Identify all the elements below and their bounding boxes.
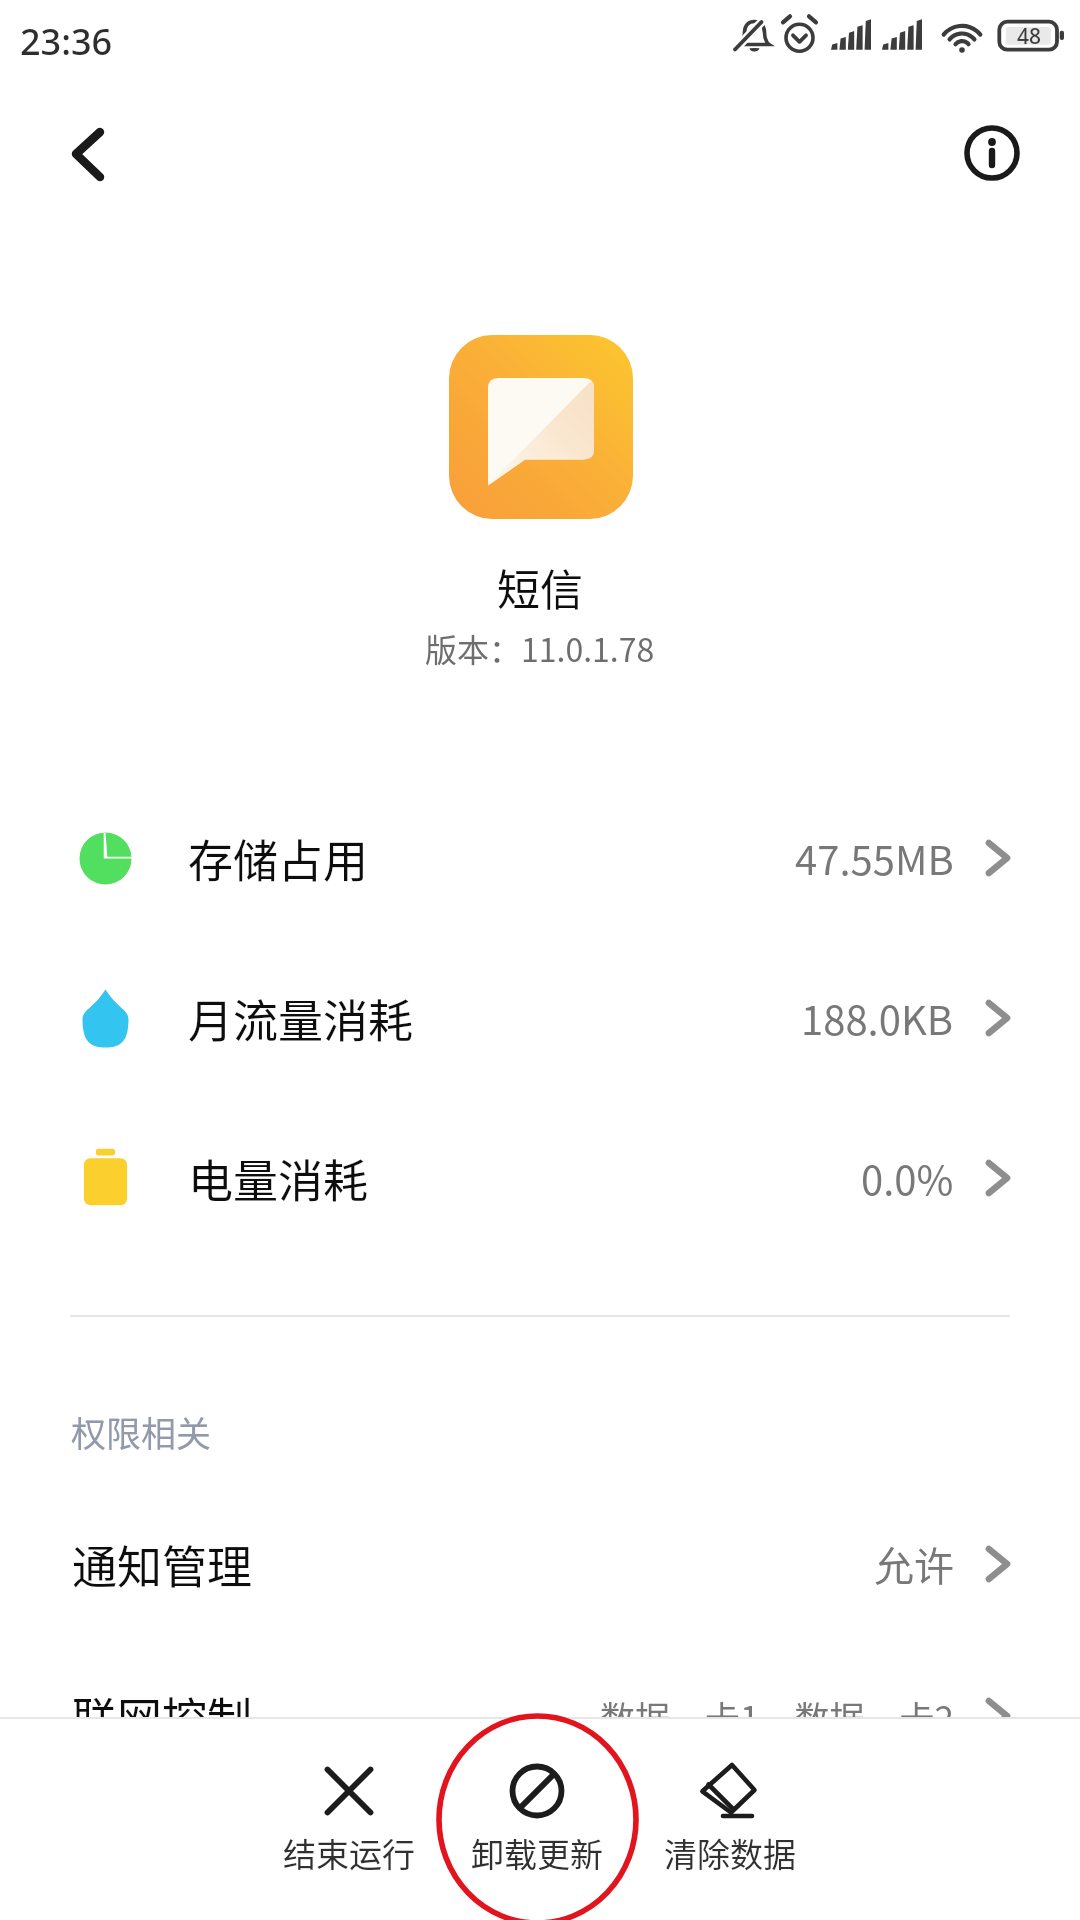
- staticText: 0.0%: [861, 1149, 954, 1207]
- button[interactable]: 存储占用: [0, 778, 1080, 938]
- staticText: 权限相关: [71, 1406, 212, 1457]
- button[interactable]: 通知管理: [0, 1494, 1080, 1634]
- button[interactable]: 卸载更新: [447, 1744, 627, 1880]
- staticText: 23:36: [20, 17, 113, 66]
- staticText: 联网控制: [72, 1684, 253, 1749]
- staticText: 短信: [497, 556, 583, 618]
- staticText: 版本：11.0.1.78: [425, 625, 655, 671]
- button[interactable]: 清除数据: [640, 1744, 820, 1880]
- button[interactable]: 联网控制: [0, 1646, 1080, 1786]
- button[interactable]: 电量消耗: [0, 1098, 1080, 1258]
- staticText: 卸载更新: [471, 1829, 603, 1877]
- staticText: 48: [1017, 22, 1042, 48]
- staticText: 月流量消耗: [188, 986, 414, 1051]
- staticText: 数据、卡1、数据、卡2: [600, 1691, 954, 1742]
- staticText: 清除数据: [664, 1829, 796, 1877]
- staticText: 电量消耗: [188, 1146, 369, 1211]
- button[interactable]: 结束运行: [259, 1744, 439, 1880]
- staticText: 通知管理: [72, 1532, 253, 1597]
- staticText: 188.0KB: [801, 989, 954, 1047]
- button[interactable]: App info: [951, 112, 1033, 194]
- staticText: 结束运行: [283, 1829, 415, 1877]
- staticText: 存储占用: [188, 826, 369, 891]
- staticText: 允许: [874, 1535, 954, 1593]
- staticText: 47.55MB: [795, 829, 954, 887]
- button[interactable]: 月流量消耗: [0, 938, 1080, 1098]
- button[interactable]: Back: [47, 113, 129, 195]
